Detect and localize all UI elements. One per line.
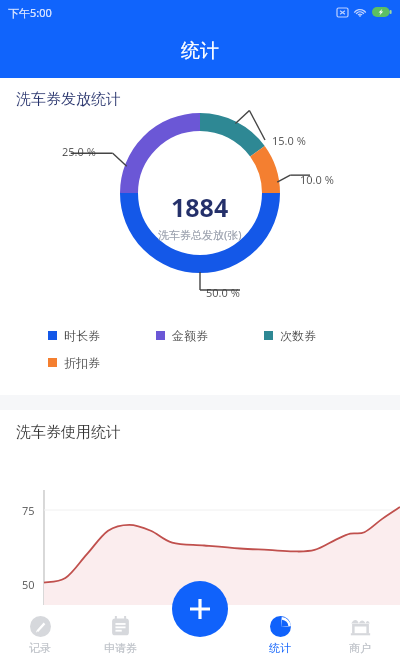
staticText: 15.0 % — [272, 133, 306, 148]
button[interactable]: 折扣券 — [48, 355, 156, 370]
button[interactable]: 次数券 — [264, 328, 372, 343]
staticText: 统计 — [269, 641, 291, 655]
staticText: 记录 — [29, 641, 51, 655]
staticText: 洗车券使用统计 — [16, 423, 121, 442]
staticText: 25.0 % — [62, 144, 96, 159]
staticText: 洗车券总发放(张) — [158, 227, 242, 242]
staticText: 折扣券 — [64, 355, 100, 370]
staticText: 1884 — [171, 190, 229, 224]
staticText: 50.0 % — [206, 285, 240, 300]
staticText: 申请券 — [104, 641, 137, 655]
button[interactable]: 时长券 — [48, 328, 156, 343]
button[interactable]: 金额券 — [156, 328, 264, 343]
staticText: 10.0 % — [300, 172, 334, 187]
staticText: 商户 — [349, 641, 371, 655]
staticText: 75 — [22, 503, 35, 518]
staticText: 金额券 — [172, 328, 208, 343]
staticText: 50 — [22, 577, 35, 592]
button[interactable]: 商户 — [320, 605, 400, 666]
staticText: 下午5:00 — [8, 5, 52, 20]
staticText: 时长券 — [64, 328, 100, 343]
button[interactable]: 申请券 — [80, 605, 160, 666]
staticText: 统计 — [181, 39, 219, 63]
button[interactable]: Add — [172, 581, 228, 637]
staticText: 洗车券发放统计 — [16, 90, 121, 109]
button[interactable]: 记录 — [0, 605, 80, 666]
button[interactable]: 统计 — [240, 605, 320, 666]
staticText: 次数券 — [280, 328, 316, 343]
